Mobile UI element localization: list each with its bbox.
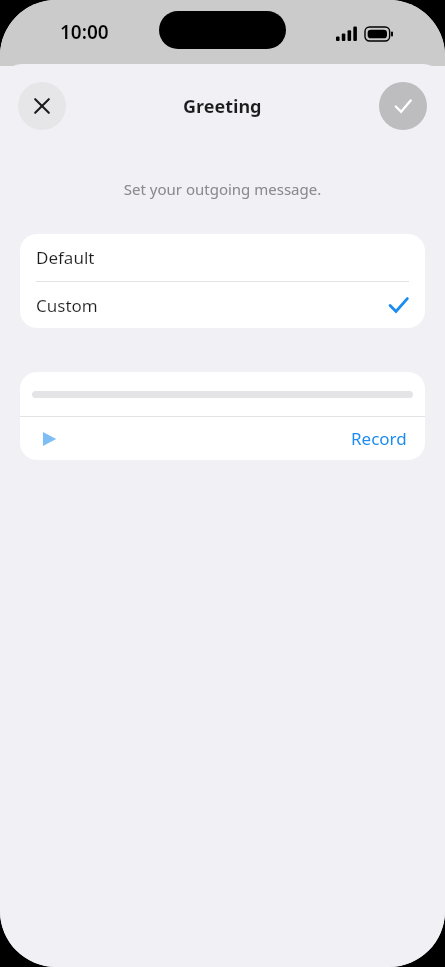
button[interactable]: Record bbox=[347, 423, 411, 454]
button[interactable]: Default bbox=[20, 234, 425, 281]
staticText: Record bbox=[351, 427, 407, 450]
staticText: Greeting bbox=[183, 94, 262, 119]
staticText: Set your outgoing message. bbox=[0, 179, 445, 199]
staticText: 10:00 bbox=[60, 19, 109, 45]
button[interactable]: Play bbox=[34, 424, 64, 454]
staticText: Custom bbox=[36, 294, 98, 317]
button[interactable]: Done bbox=[379, 82, 427, 130]
button[interactable]: Close bbox=[18, 82, 66, 130]
staticText: Default bbox=[36, 246, 95, 269]
button[interactable]: Custom bbox=[20, 282, 425, 328]
